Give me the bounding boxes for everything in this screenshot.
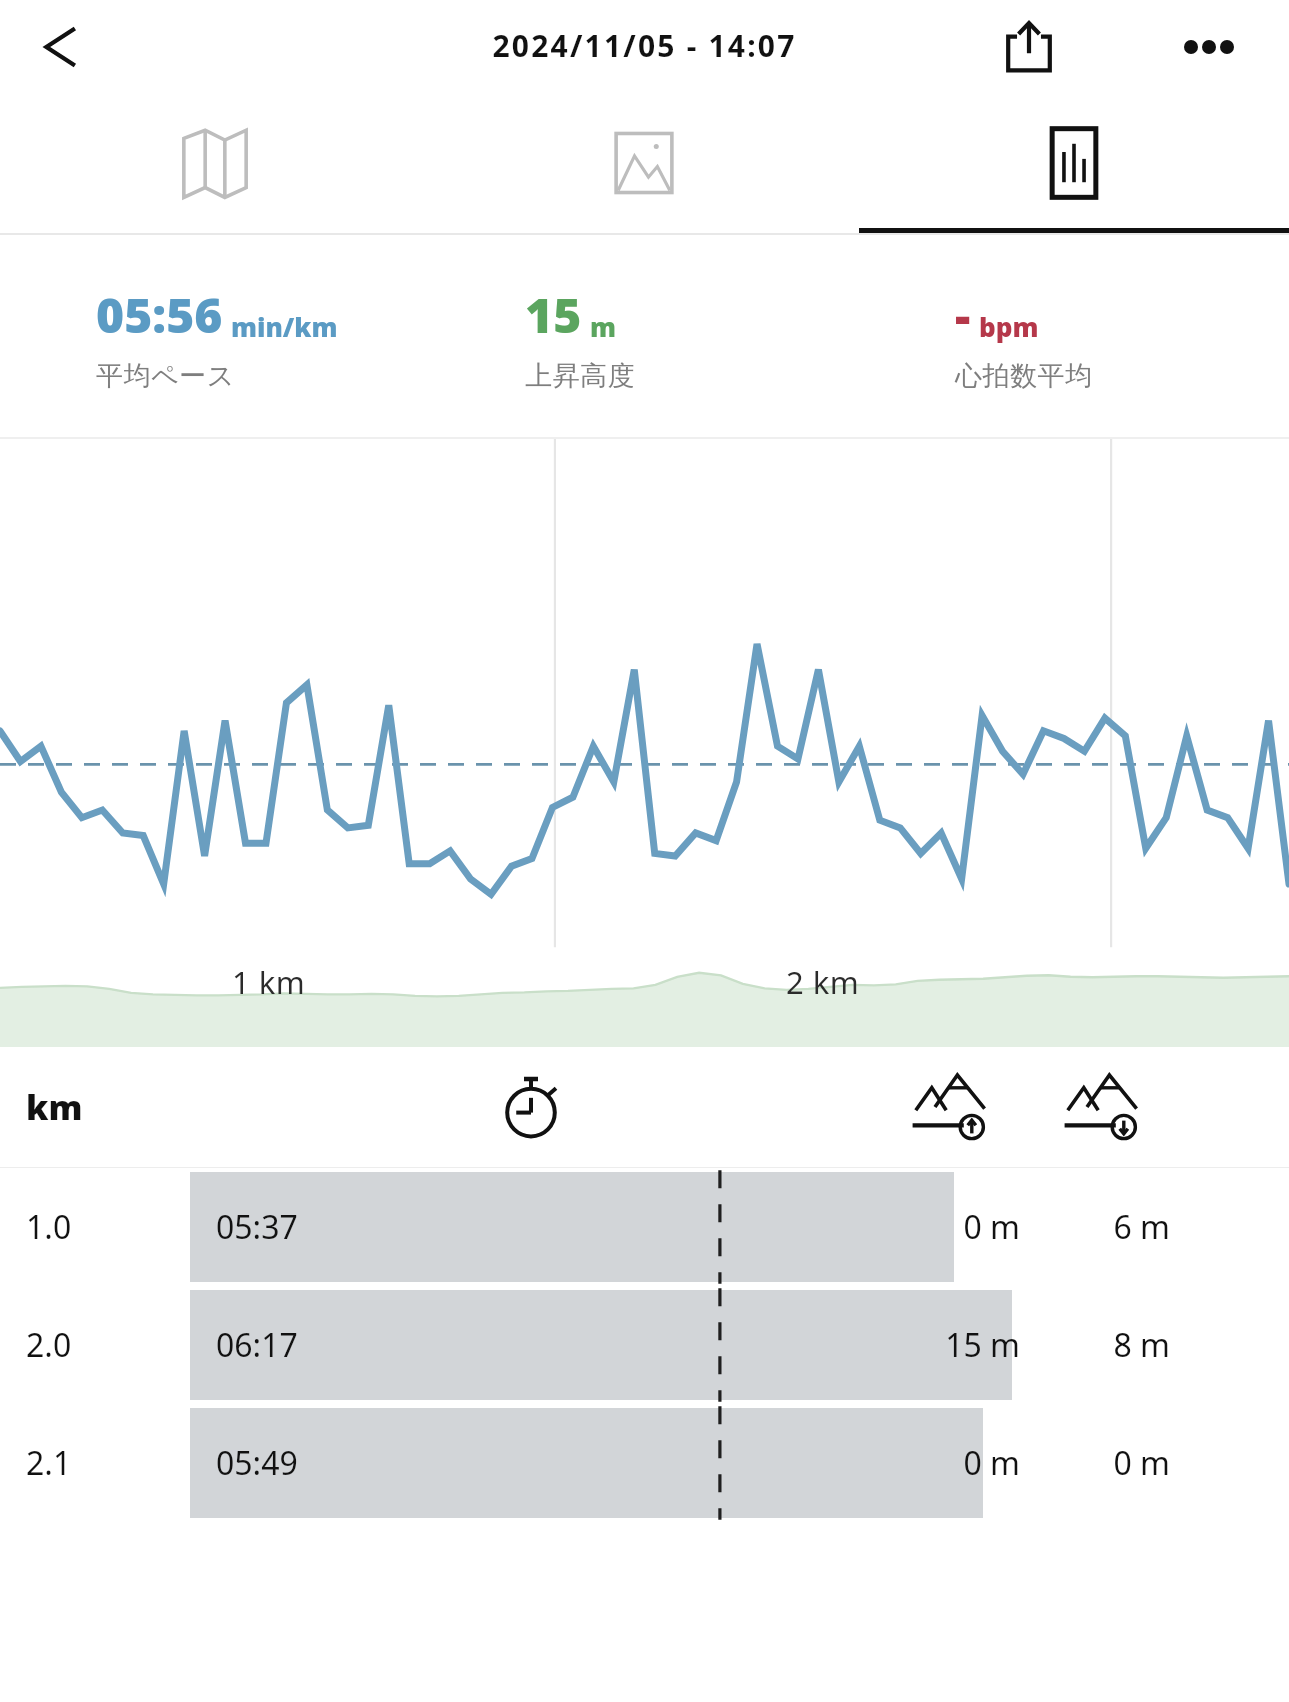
staticText: 8 m [1030, 1323, 1170, 1367]
staticText: bpm [979, 309, 1039, 344]
other: Duration [492, 1068, 570, 1146]
staticText: 05:49 [216, 1441, 298, 1485]
staticText: 0 m [880, 1441, 1020, 1485]
staticText: 2024/11/05 - 14:07 [492, 25, 797, 66]
staticText: 15 [525, 282, 582, 347]
button[interactable]: Back [24, 9, 100, 85]
staticText: - [955, 282, 971, 347]
button[interactable]: Map [0, 93, 429, 233]
staticText: 6 m [1030, 1205, 1170, 1249]
button[interactable]: 2.1 [0, 1404, 1289, 1522]
staticText: 0 m [880, 1205, 1020, 1249]
staticText: 06:17 [216, 1323, 298, 1367]
staticText: 平均ペース [96, 359, 235, 393]
staticText: m [590, 309, 617, 344]
staticText: min/km [231, 309, 338, 344]
staticText: 2.1 [26, 1441, 72, 1485]
button[interactable]: 1.0 [0, 1168, 1289, 1286]
staticText: 2.0 [26, 1323, 72, 1367]
staticText: 1 km [232, 961, 306, 1003]
staticText: 15 m [880, 1323, 1020, 1367]
button[interactable]: Share [989, 7, 1069, 87]
staticText: 05:56 [96, 282, 223, 347]
other: Descent [1060, 1064, 1146, 1150]
staticText: 上昇高度 [525, 359, 635, 393]
staticText: 1.0 [26, 1205, 72, 1249]
staticText: 2 km [786, 961, 860, 1003]
button[interactable]: Charts [859, 93, 1289, 233]
staticText: 0 m [1030, 1441, 1170, 1485]
staticText: km [26, 1084, 83, 1130]
button[interactable]: Photos [429, 93, 859, 233]
button[interactable]: 2.0 [0, 1286, 1289, 1404]
other: Ascent [908, 1064, 994, 1150]
staticText: 心拍数平均 [955, 359, 1093, 393]
staticText: 05:37 [216, 1205, 298, 1249]
button[interactable]: More options [1169, 7, 1249, 87]
